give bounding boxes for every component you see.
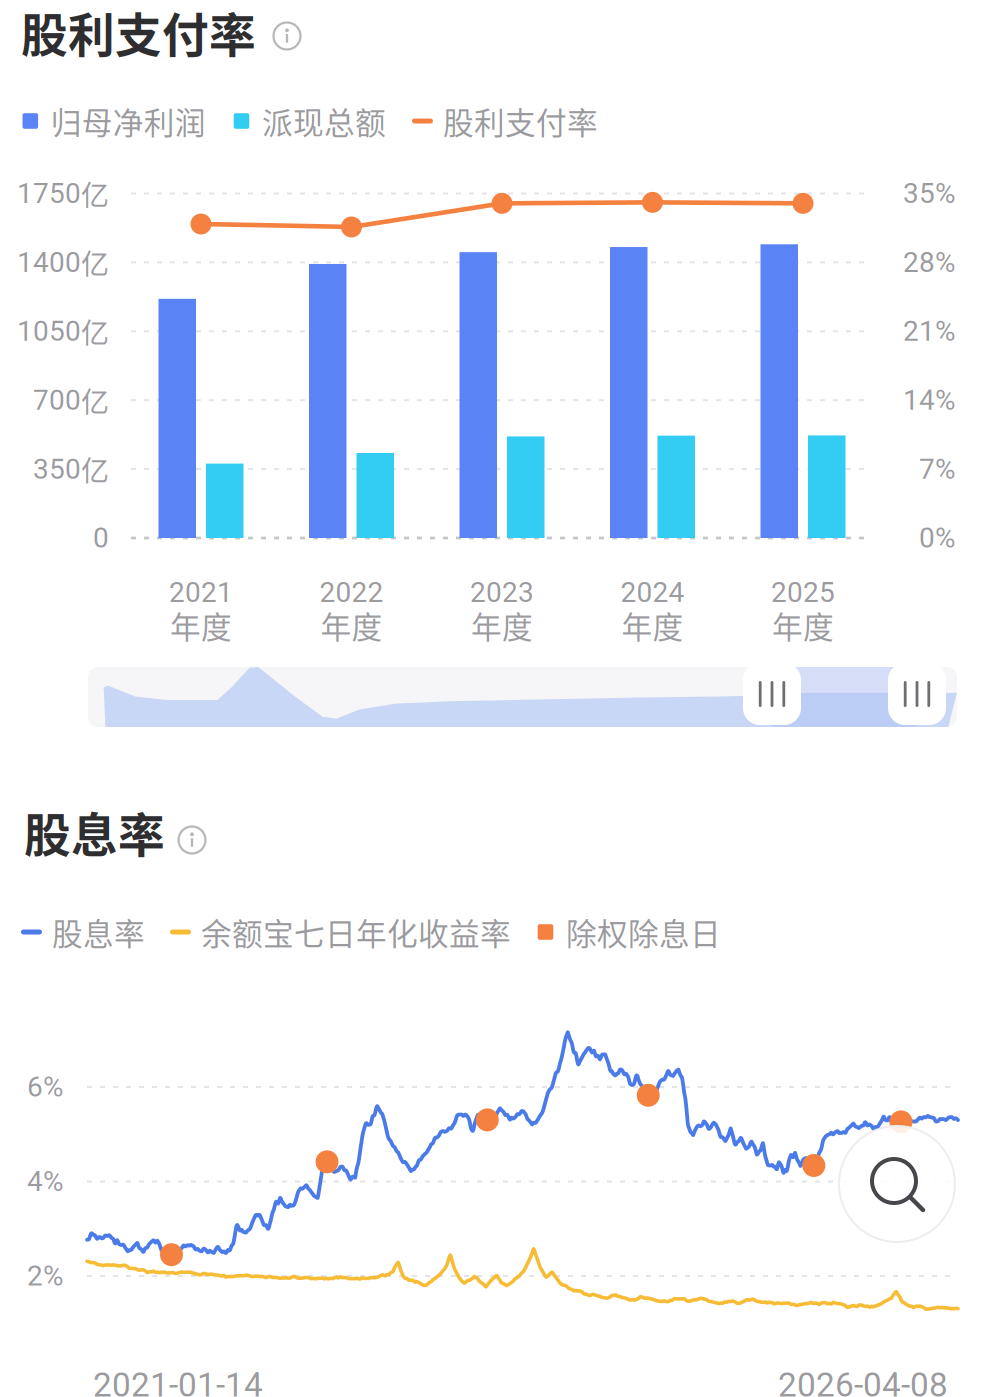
staticText: 35% [903,177,956,210]
staticText: 2023 [470,576,534,609]
staticText: 1050 [17,315,81,348]
staticText: 2025 [771,576,835,609]
staticText: 年度 [621,603,683,647]
staticText: 21% [903,315,956,348]
staticText: 1400 [17,246,81,279]
staticText: 年度 [170,603,232,647]
staticText: 股利支付率 [21,0,256,66]
staticText: 0% [919,522,956,554]
staticText: 股利支付率 [443,99,598,143]
staticText: 余额宝七日年化收益率 [201,910,511,954]
button[interactable]: Range start handle [743,663,801,725]
staticText: 亿 [81,380,109,420]
staticText: 700 [33,384,81,417]
button[interactable]: Range end handle [888,663,946,725]
staticText: 年度 [471,603,533,647]
button[interactable]: 股息率 [24,798,165,866]
staticText: 6% [27,1071,64,1103]
staticText: 2021-01-14 [93,1365,263,1397]
staticText: 年度 [772,603,834,647]
staticText: 1750 [17,177,81,210]
staticText: 350 [33,453,81,485]
staticText: 2024 [620,576,684,609]
staticText: 股息率 [24,798,165,866]
staticText: 亿 [81,449,109,489]
staticText: 14% [903,384,956,417]
staticText: 4% [27,1165,64,1198]
staticText: 派现总额 [262,99,386,143]
staticText: 2026-04-08 [778,1365,948,1397]
staticText: 2021 [169,576,233,609]
staticText: 28% [903,246,956,279]
staticText: 亿 [81,242,109,283]
staticText: 2% [27,1260,64,1292]
staticText: 归母净利润 [51,99,206,143]
staticText: 7% [919,453,956,485]
staticText: 亿 [81,173,109,214]
staticText: 除权除息日 [566,910,721,954]
staticText: 2022 [319,576,383,609]
staticText: 股息率 [52,910,145,954]
button[interactable]: 股利支付率 [21,0,256,66]
staticText: 年度 [320,603,382,647]
staticText: 亿 [81,311,109,351]
button[interactable]: Zoom [0,0,985,1397]
staticText: 0 [93,522,109,554]
